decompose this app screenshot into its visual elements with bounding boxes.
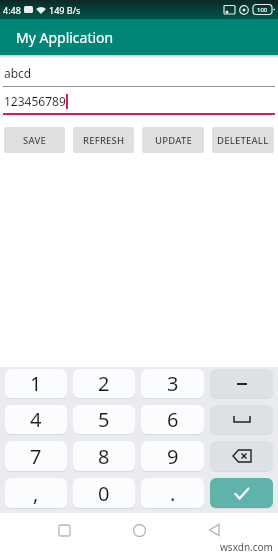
button[interactable]: [199, 515, 229, 545]
staticText: 1: [30, 370, 42, 397]
staticText: 149 B/s: [49, 4, 81, 16]
staticText: 4:48: [3, 4, 21, 16]
button[interactable]: 4: [5, 405, 67, 434]
button[interactable]: 7: [5, 441, 67, 471]
staticText: .: [170, 480, 176, 507]
staticText: 9: [167, 443, 179, 470]
button[interactable]: 5: [73, 405, 135, 434]
staticText: REFRESH: [83, 134, 125, 147]
staticText: ,: [33, 480, 39, 507]
button[interactable]: 123456789: [3, 87, 275, 115]
staticText: DELETEALL: [217, 134, 269, 147]
staticText: 100: [257, 6, 268, 14]
button[interactable]: DELETEALL: [212, 127, 274, 153]
staticText: SAVE: [23, 134, 47, 147]
staticText: UPDATE: [155, 134, 192, 147]
button[interactable]: 8: [73, 441, 135, 471]
button[interactable]: 0: [73, 478, 135, 508]
button[interactable]: [210, 478, 273, 508]
button[interactable]: 2: [73, 369, 135, 398]
button[interactable]: REFRESH: [73, 127, 134, 153]
button[interactable]: 6: [141, 405, 204, 434]
staticText: 6: [167, 406, 179, 433]
button[interactable]: [210, 369, 273, 398]
staticText: My Application: [16, 28, 114, 47]
button[interactable]: UPDATE: [142, 127, 204, 153]
button[interactable]: 1: [5, 369, 67, 398]
staticText: abcd: [4, 65, 32, 81]
staticText: 2: [98, 370, 110, 397]
staticText: wsxdn.com: [220, 540, 273, 554]
button[interactable]: ,: [5, 478, 67, 508]
staticText: 8: [98, 443, 110, 470]
button[interactable]: [210, 405, 273, 434]
button[interactable]: [210, 441, 273, 471]
staticText: 123456789: [4, 93, 66, 109]
button[interactable]: SAVE: [4, 127, 65, 153]
button[interactable]: [49, 515, 79, 545]
button[interactable]: abcd: [3, 58, 275, 87]
button[interactable]: .: [141, 478, 204, 508]
staticText: 4: [30, 406, 42, 433]
staticText: 0: [98, 480, 110, 507]
staticText: 5: [98, 406, 110, 433]
staticText: 7: [30, 443, 42, 470]
button[interactable]: 9: [141, 441, 204, 471]
button[interactable]: 3: [141, 369, 204, 398]
staticText: 3: [167, 370, 179, 397]
button[interactable]: [124, 515, 154, 545]
